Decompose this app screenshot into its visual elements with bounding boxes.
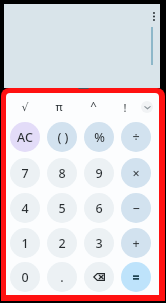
staticText: % [94, 129, 105, 146]
button[interactable]: Show more functions [141, 101, 153, 113]
button[interactable]: 0 [10, 262, 40, 292]
button[interactable]: 9 [84, 158, 114, 188]
button[interactable]: Backspace [84, 262, 114, 292]
button[interactable]: 4 [10, 193, 40, 223]
staticText: − [132, 200, 140, 217]
staticText: 9 [95, 165, 103, 182]
button[interactable]: 6 [84, 193, 114, 223]
staticText: () [57, 129, 72, 146]
staticText: 3 [95, 235, 103, 252]
staticText: 4 [21, 200, 29, 217]
button[interactable]: Factorial [114, 97, 135, 117]
button[interactable]: Pi [48, 97, 69, 117]
staticText: 0 [21, 269, 29, 286]
button[interactable]: More options [147, 9, 161, 23]
button[interactable]: Plus [121, 228, 151, 258]
button[interactable]: . [47, 262, 77, 292]
button[interactable]: Divide [121, 122, 151, 152]
staticText: AC [17, 129, 33, 146]
staticText: 1 [21, 235, 29, 252]
staticText: 2 [58, 235, 66, 252]
button[interactable]: 7 [10, 158, 40, 188]
staticText: √ [21, 101, 29, 114]
button[interactable]: Parentheses [47, 122, 77, 152]
button[interactable]: All clear [10, 122, 40, 152]
staticText: ^ [90, 98, 97, 114]
staticText: π [55, 100, 63, 114]
button[interactable]: 8 [47, 158, 77, 188]
button[interactable]: 5 [47, 193, 77, 223]
staticText: × [132, 165, 140, 182]
staticText: . [60, 269, 64, 286]
button[interactable]: Square root [14, 97, 35, 117]
staticText: 8 [58, 165, 66, 182]
button[interactable]: 3 [84, 228, 114, 258]
button[interactable]: Minus [121, 193, 151, 223]
button[interactable]: Equals [121, 262, 151, 292]
staticText: ÷ [132, 129, 140, 146]
staticText: 6 [95, 200, 103, 217]
staticText: 5 [58, 200, 66, 217]
staticText: + [132, 235, 140, 252]
button[interactable]: Multiply [121, 158, 151, 188]
staticText: 7 [21, 165, 29, 182]
staticText: ! [123, 100, 127, 115]
button[interactable]: 1 [10, 228, 40, 258]
button[interactable]: Percent [84, 122, 114, 152]
button[interactable]: Power [83, 96, 104, 116]
button[interactable]: 2 [47, 228, 77, 258]
